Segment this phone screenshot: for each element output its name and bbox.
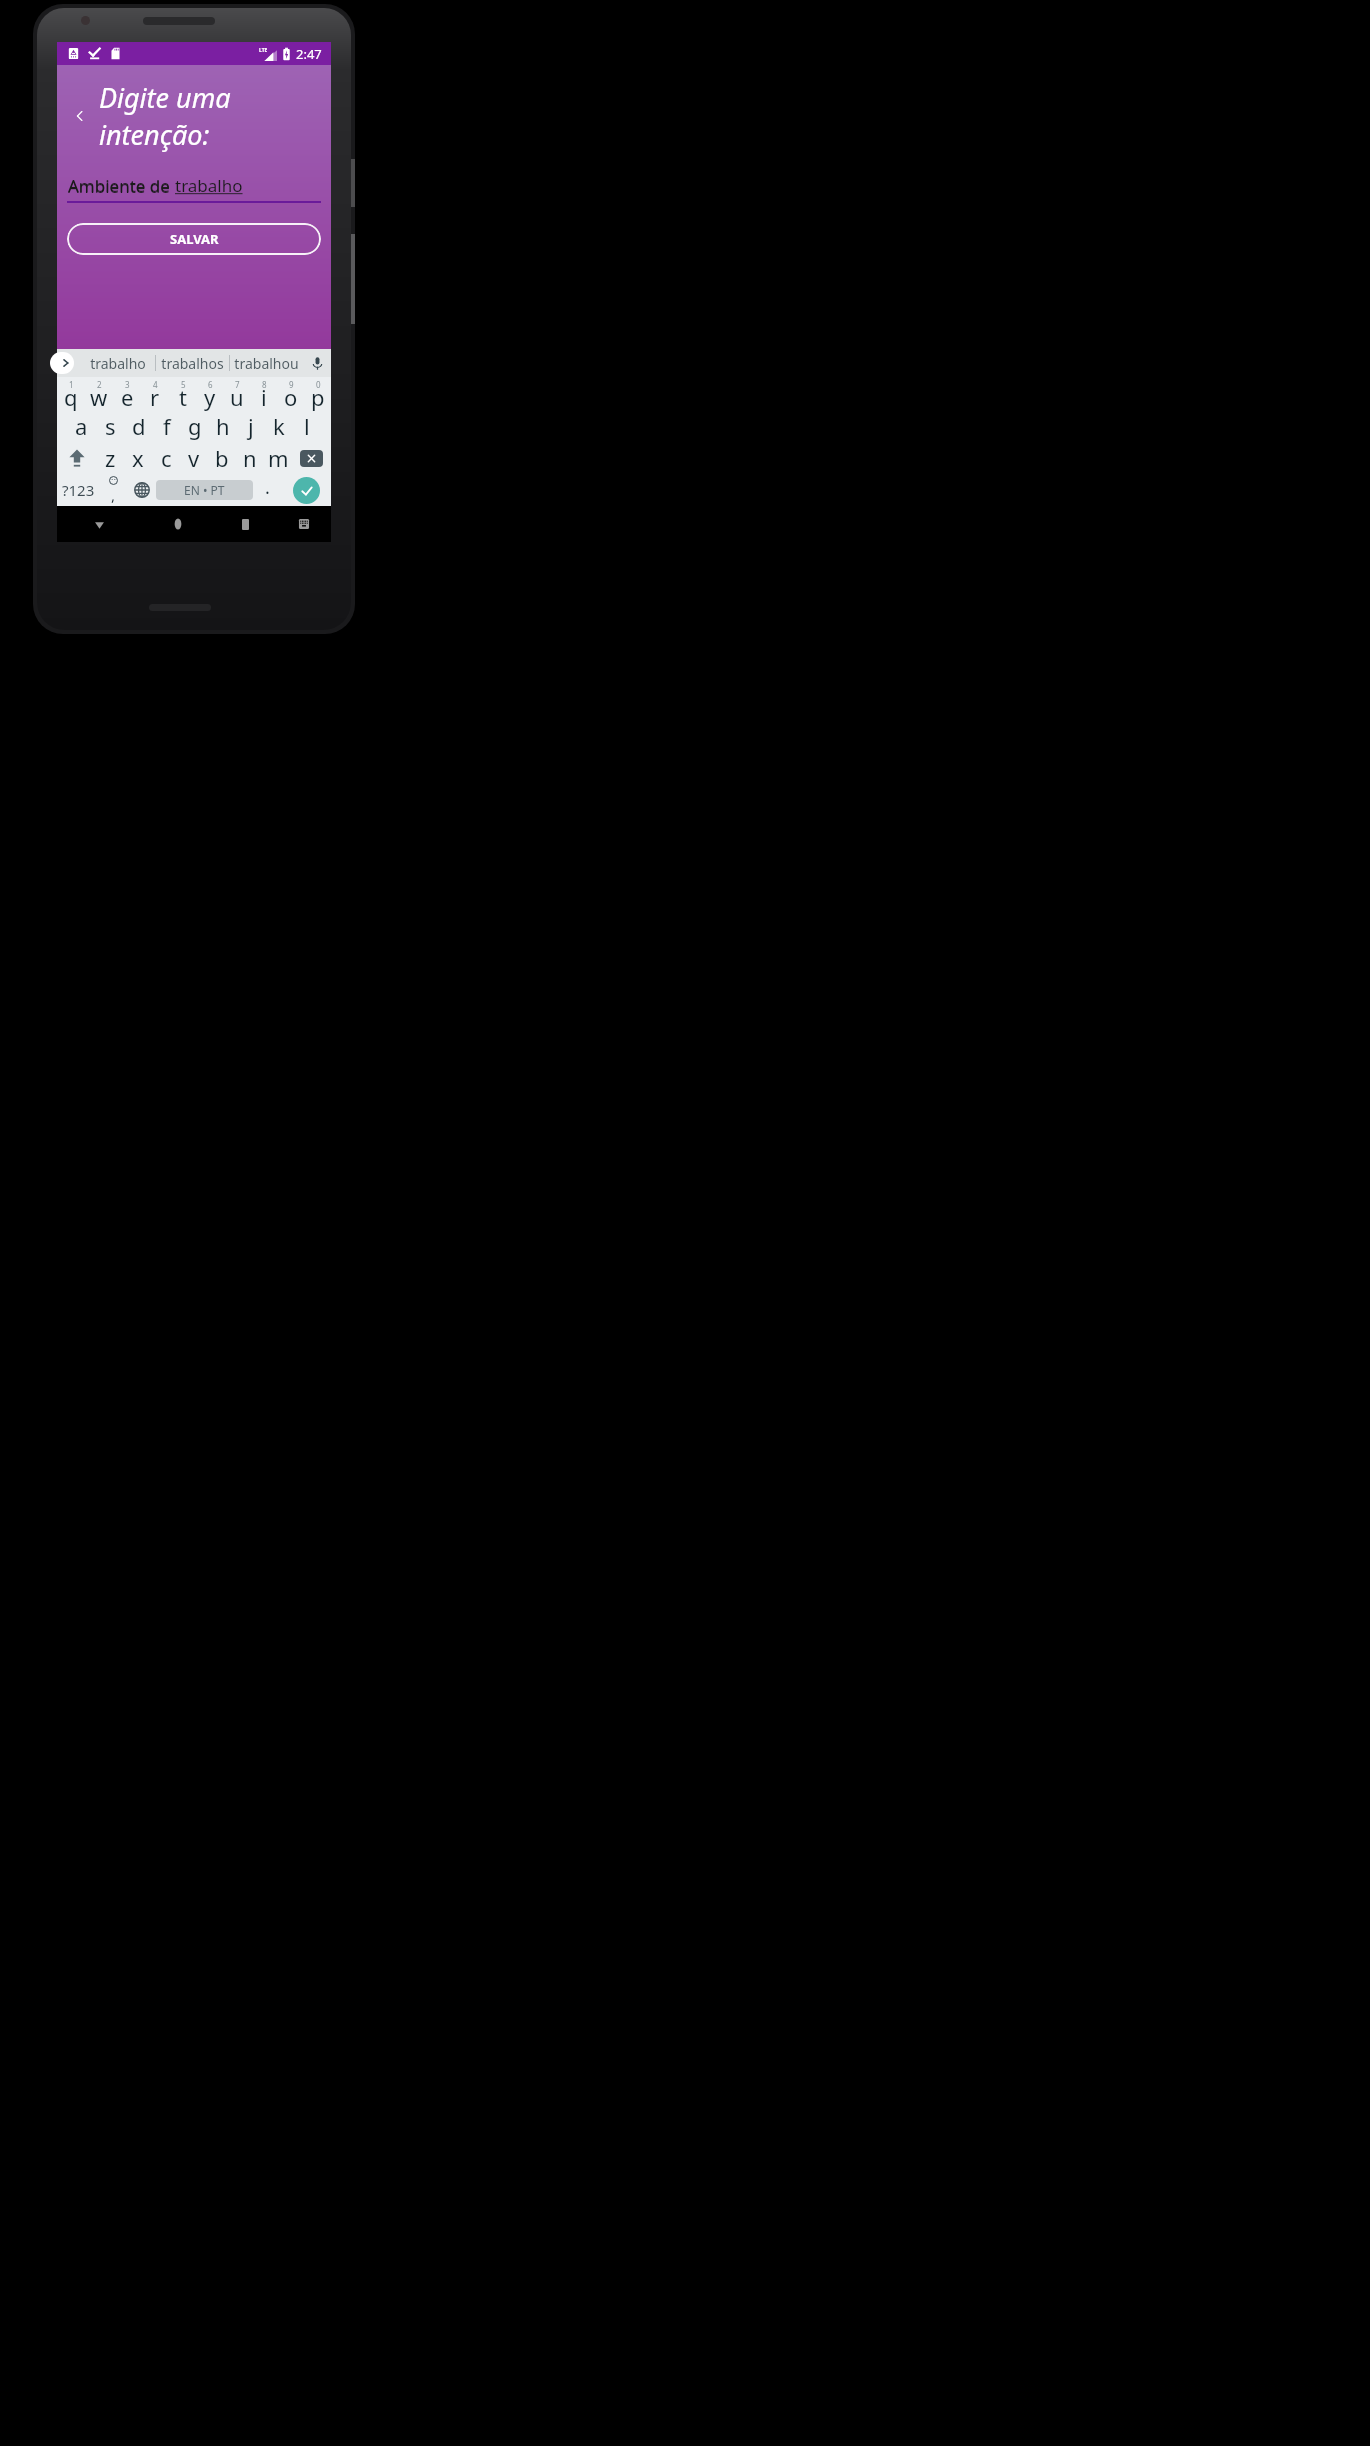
button[interactable]: Emoji and comma xyxy=(99,474,127,506)
staticText: r xyxy=(150,382,160,412)
staticText: . xyxy=(265,475,270,500)
staticText: trabalho xyxy=(90,354,146,373)
button[interactable]: b xyxy=(208,442,236,474)
staticText: v xyxy=(188,443,200,473)
button[interactable]: ?123 xyxy=(57,474,99,506)
button[interactable]: 0 xyxy=(304,377,331,410)
button[interactable]: s xyxy=(96,410,125,442)
button[interactable]: f xyxy=(153,410,181,442)
staticText: k xyxy=(273,411,285,441)
button[interactable]: Home xyxy=(141,506,214,542)
staticText: 2:47 xyxy=(296,45,322,63)
staticText: a xyxy=(75,411,88,441)
button[interactable]: c xyxy=(152,442,180,474)
staticText: n xyxy=(243,443,257,473)
staticText: e xyxy=(121,382,134,412)
staticText: c xyxy=(161,443,172,473)
button[interactable]: h xyxy=(209,410,237,442)
staticText: 0 xyxy=(316,379,321,390)
button[interactable]: x xyxy=(124,442,152,474)
staticText: , xyxy=(111,485,116,505)
staticText: f xyxy=(163,411,171,441)
button[interactable]: 3 xyxy=(113,377,141,410)
button[interactable]: v xyxy=(180,442,208,474)
staticText: 3 xyxy=(125,379,130,390)
staticText: trabalho xyxy=(175,174,243,197)
button[interactable]: m xyxy=(264,442,292,474)
staticText: z xyxy=(105,443,116,473)
button[interactable]: Voice input xyxy=(303,349,331,377)
staticText: SALVAR xyxy=(170,230,219,248)
staticText: 5 xyxy=(181,379,186,390)
button[interactable]: n xyxy=(236,442,264,474)
button[interactable]: a xyxy=(67,410,96,442)
staticText: l xyxy=(304,411,310,441)
staticText: j xyxy=(248,411,254,441)
staticText: b xyxy=(215,443,229,473)
button[interactable]: l xyxy=(293,410,321,442)
button[interactable]: z xyxy=(96,442,124,474)
button[interactable]: trabalho xyxy=(81,349,155,377)
button[interactable]: 7 xyxy=(223,377,250,410)
button[interactable]: 1 xyxy=(57,377,85,410)
button[interactable]: Ambiente de xyxy=(68,175,320,198)
staticText: o xyxy=(284,382,298,412)
button[interactable]: 9 xyxy=(277,377,304,410)
button[interactable]: d xyxy=(125,410,153,442)
staticText: 6 xyxy=(208,379,213,390)
button[interactable]: g xyxy=(181,410,209,442)
button[interactable]: Done xyxy=(282,474,331,506)
staticText: 9 xyxy=(289,379,294,390)
staticText: 2 xyxy=(97,379,102,390)
button[interactable]: More options xyxy=(57,349,81,377)
button[interactable]: trabalhos xyxy=(156,349,229,377)
staticText: trabalhou xyxy=(234,354,299,373)
button[interactable]: 2 xyxy=(85,377,113,410)
button[interactable]: 5 xyxy=(169,377,196,410)
staticText: Digite uma intenção: xyxy=(99,79,331,153)
staticText: s xyxy=(105,411,116,441)
button[interactable]: Recent apps xyxy=(214,506,276,542)
staticText: x xyxy=(132,443,144,473)
button[interactable]: Shift xyxy=(57,442,96,474)
button[interactable]: SALVAR xyxy=(67,223,321,255)
button[interactable]: 6 xyxy=(196,377,223,410)
button[interactable]: 4 xyxy=(141,377,169,410)
staticText: 7 xyxy=(235,379,240,390)
staticText: u xyxy=(230,382,244,412)
staticText: trabalhos xyxy=(161,354,224,373)
staticText: i xyxy=(261,382,267,412)
button[interactable]: Back xyxy=(65,101,95,131)
staticText: 1 xyxy=(69,379,74,390)
staticText: Ambiente de xyxy=(68,174,175,197)
button[interactable]: j xyxy=(237,410,265,442)
button[interactable]: Hide keyboard xyxy=(57,506,141,542)
staticText: d xyxy=(132,411,146,441)
button[interactable]: trabalhou xyxy=(230,349,303,377)
staticText: t xyxy=(179,382,187,412)
staticText: ?123 xyxy=(62,480,95,500)
button[interactable]: Backspace xyxy=(292,442,331,474)
staticText: m xyxy=(268,443,289,473)
staticText: p xyxy=(311,382,325,412)
staticText: y xyxy=(204,382,216,412)
staticText: LTE xyxy=(259,47,268,54)
staticText: 8 xyxy=(262,379,267,390)
staticText: 4 xyxy=(153,379,158,390)
button[interactable]: Change language xyxy=(127,474,156,506)
button[interactable]: k xyxy=(265,410,293,442)
button[interactable]: . xyxy=(253,474,282,506)
staticText: g xyxy=(188,411,202,441)
staticText: w xyxy=(90,382,108,412)
button[interactable]: 8 xyxy=(250,377,277,410)
staticText: Ambiente de xyxy=(68,175,175,198)
button[interactable]: Switch keyboard xyxy=(276,506,331,542)
staticText: h xyxy=(216,411,230,441)
staticText: q xyxy=(64,382,78,412)
button[interactable]: EN • PT xyxy=(156,480,253,500)
staticText: EN • PT xyxy=(184,482,225,498)
